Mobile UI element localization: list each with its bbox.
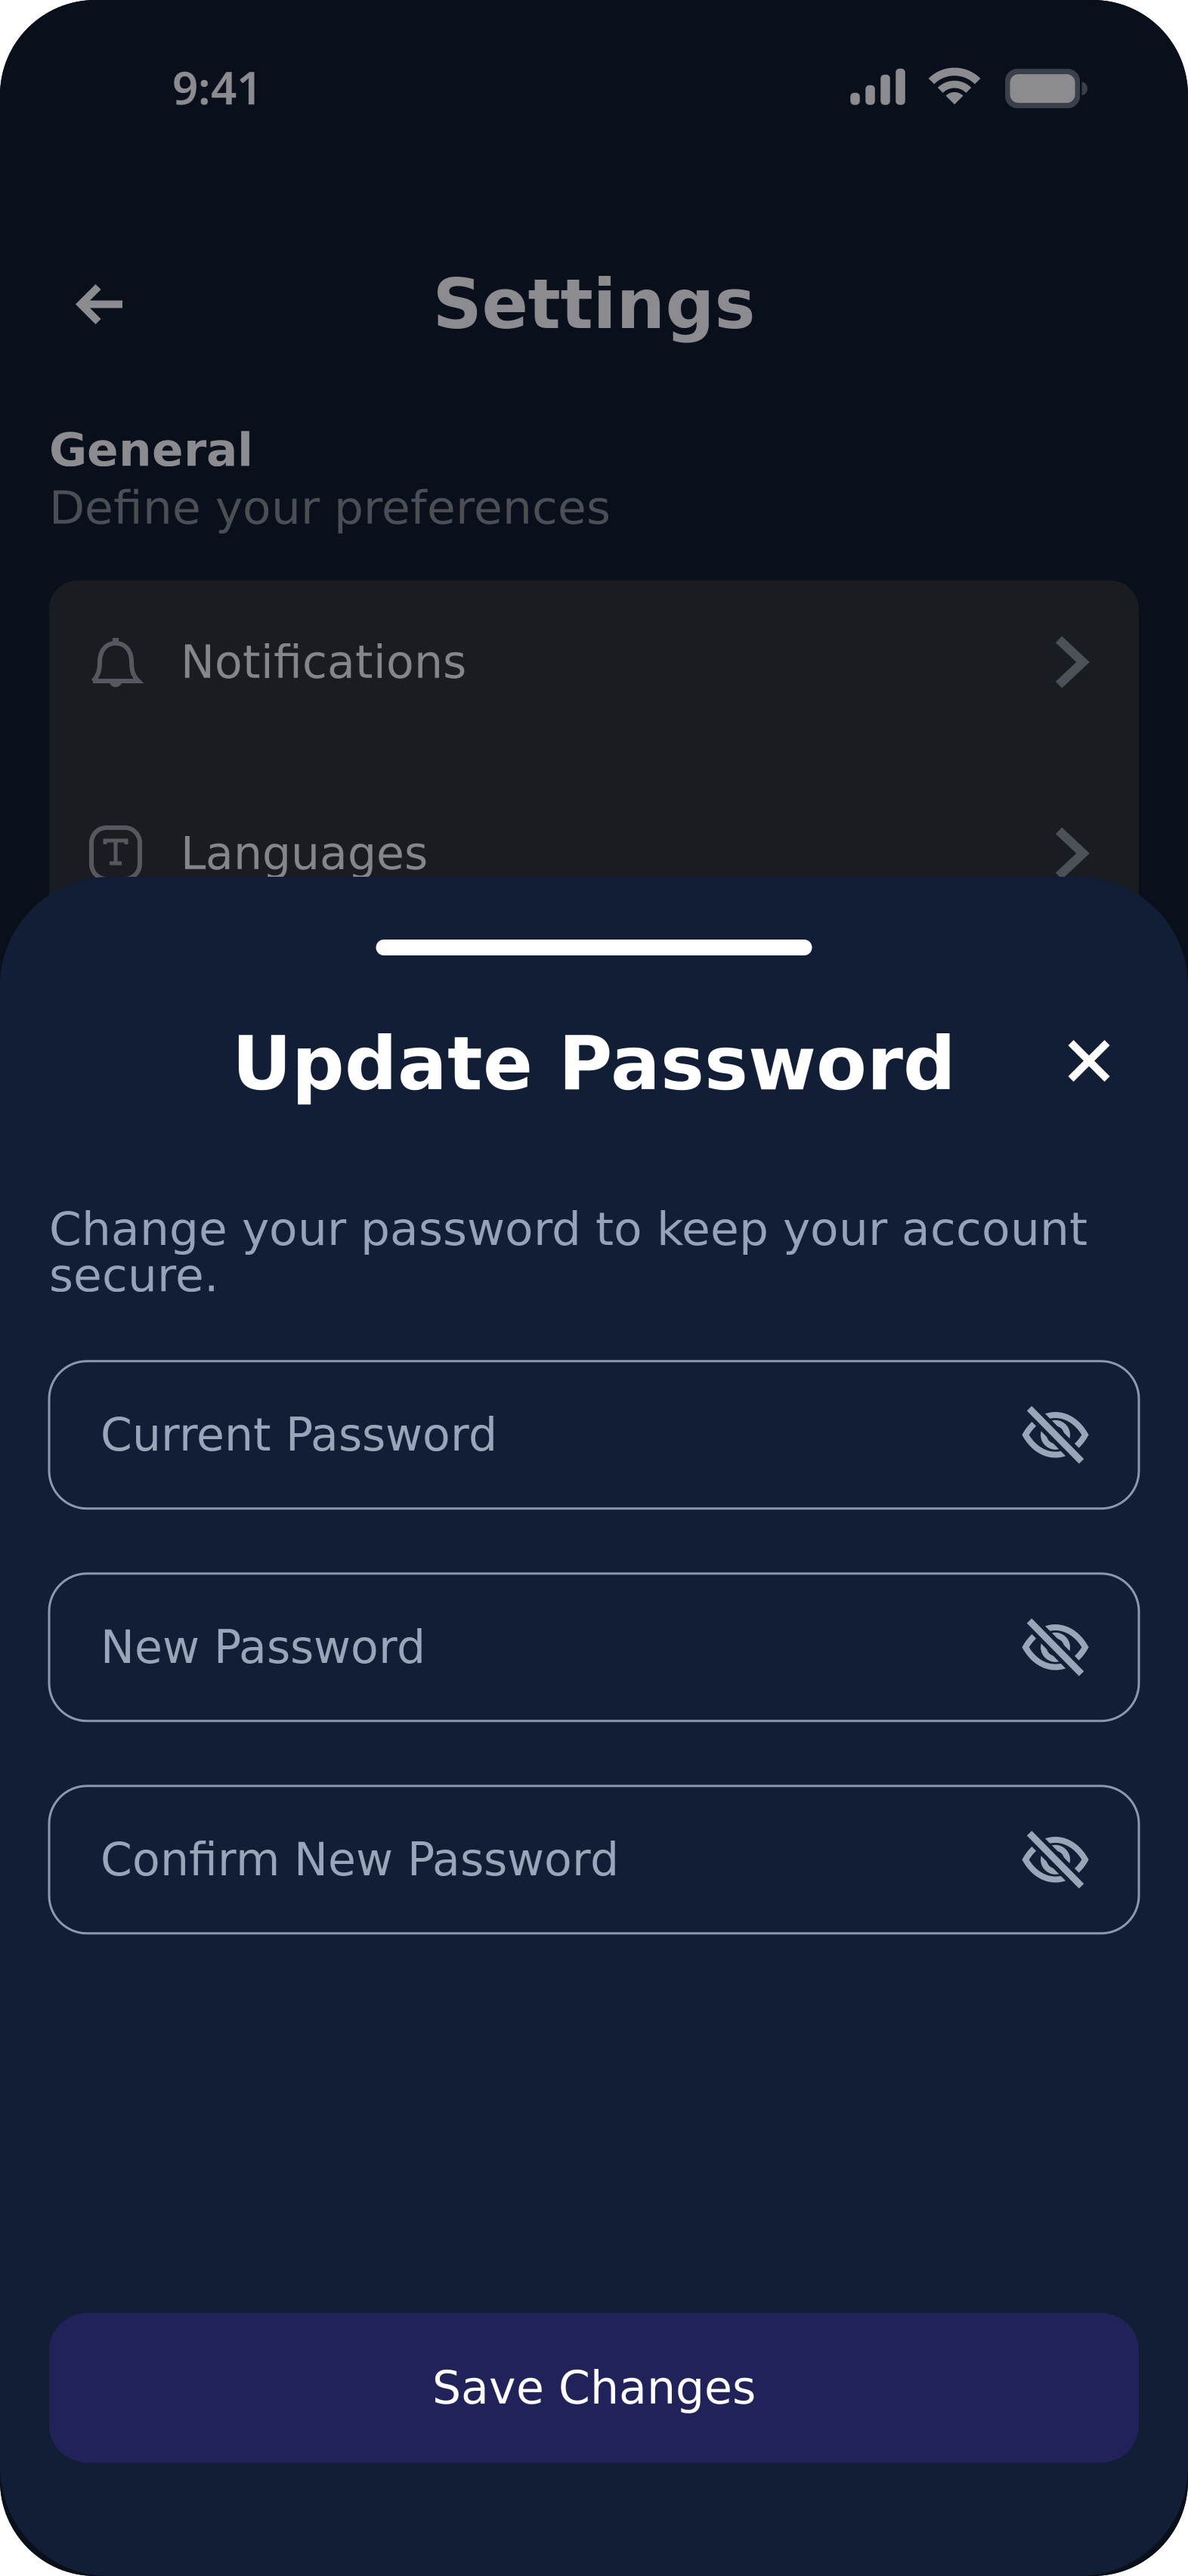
- button[interactable]: Theme: [49, 963, 1139, 1126]
- button[interactable]: Close: [1057, 1028, 1121, 1093]
- staticText: Languages: [181, 827, 428, 880]
- staticText: Current Password: [101, 1408, 497, 1461]
- button[interactable]: Current Password: [49, 1361, 1139, 1509]
- staticText: 9:41: [172, 56, 262, 118]
- button[interactable]: Save Changes: [49, 2313, 1139, 2463]
- staticText: Define your preferences: [49, 481, 611, 535]
- staticText: Settings: [433, 264, 755, 344]
- staticText: Theme: [181, 1018, 337, 1071]
- staticText: New Password: [101, 1621, 425, 1674]
- button[interactable]: New Password: [49, 1574, 1139, 1721]
- staticText: Notifications: [181, 636, 466, 689]
- staticText: General: [49, 423, 253, 477]
- staticText: Confirm New Password: [101, 1833, 619, 1886]
- staticText: Save Changes: [432, 2361, 756, 2414]
- button[interactable]: Confirm New Password: [49, 1786, 1139, 1933]
- staticText: Change your password to keep your accoun…: [49, 1202, 1087, 1302]
- staticText: Update Password: [232, 1021, 956, 1107]
- button[interactable]: Languages: [49, 772, 1139, 935]
- button[interactable]: Notifications: [49, 581, 1139, 744]
